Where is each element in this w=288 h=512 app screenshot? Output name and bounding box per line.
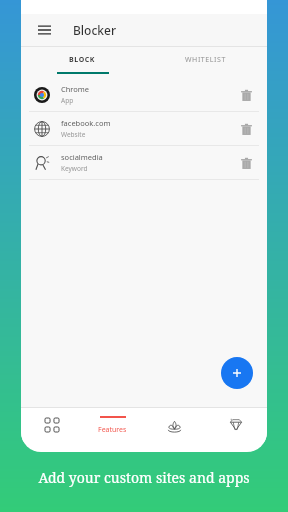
staticText: Add your custom sites and apps <box>38 468 250 487</box>
staticText: Chrome <box>61 84 90 94</box>
button[interactable]: Features <box>82 408 143 442</box>
staticText: Website <box>61 130 86 139</box>
button[interactable]: BLOCK <box>21 47 144 72</box>
button[interactable]: Delete facebook.com <box>235 118 257 140</box>
button[interactable]: socialmedia <box>21 146 267 179</box>
staticText: socialmedia <box>61 152 103 162</box>
button[interactable]: WHITELIST <box>144 47 267 72</box>
button[interactable]: Apps <box>21 408 82 442</box>
button[interactable]: Chrome <box>21 78 267 111</box>
button[interactable]: Menu <box>32 18 56 42</box>
staticText: Blocker <box>73 22 116 38</box>
button[interactable]: Delete Chrome <box>235 84 257 106</box>
staticText: Features <box>98 425 127 435</box>
staticText: WHITELIST <box>185 55 227 65</box>
staticText: BLOCK <box>69 55 96 65</box>
staticText: facebook.com <box>61 118 111 128</box>
staticText: App <box>61 96 74 105</box>
button[interactable]: Delete socialmedia <box>235 152 257 174</box>
button[interactable]: Stats <box>205 408 267 442</box>
button[interactable]: Add <box>221 357 253 389</box>
button[interactable]: Focus <box>143 408 205 442</box>
staticText: Keyword <box>61 164 88 173</box>
button[interactable]: facebook.com <box>21 112 267 145</box>
